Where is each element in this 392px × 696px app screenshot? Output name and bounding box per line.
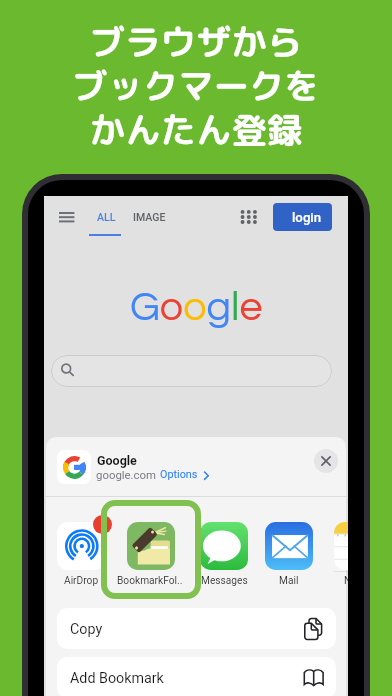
button[interactable]: Menu bbox=[49, 202, 84, 230]
button[interactable]: AirDrop bbox=[47, 522, 115, 585]
button[interactable] bbox=[51, 355, 332, 387]
staticText: Options bbox=[160, 468, 198, 481]
button[interactable]: BookmarkFol... bbox=[117, 522, 185, 585]
staticText: login bbox=[292, 210, 322, 225]
button[interactable]: Close bbox=[314, 449, 338, 473]
button[interactable]: Messages bbox=[190, 522, 258, 585]
button[interactable]: ALL bbox=[89, 202, 121, 236]
staticText: Messages bbox=[201, 575, 248, 587]
staticText: google.com bbox=[96, 468, 157, 481]
button[interactable]: Add Bookmark bbox=[57, 657, 336, 696]
staticText: Google bbox=[97, 453, 137, 468]
staticText: Mail bbox=[279, 575, 299, 587]
staticText: Google bbox=[130, 286, 263, 329]
staticText: Copy bbox=[70, 621, 103, 638]
staticText: ALL bbox=[97, 211, 116, 223]
staticText: AirDrop bbox=[64, 575, 99, 587]
button[interactable]: Google apps bbox=[230, 200, 258, 228]
button[interactable]: Google bbox=[96, 449, 266, 482]
button[interactable]: IMAGE bbox=[133, 202, 169, 230]
staticText: Add Bookmark bbox=[70, 670, 164, 687]
button[interactable]: Mail bbox=[255, 522, 323, 585]
staticText: ブラウザから ブックマークを かんたん登録 bbox=[72, 17, 320, 155]
staticText: Notes bbox=[344, 575, 348, 587]
button[interactable]: Copy bbox=[57, 608, 336, 649]
button[interactable]: Notes bbox=[324, 522, 348, 585]
staticText: IMAGE bbox=[133, 211, 166, 223]
staticText: BookmarkFol... bbox=[117, 575, 185, 587]
button[interactable]: login bbox=[273, 203, 332, 231]
